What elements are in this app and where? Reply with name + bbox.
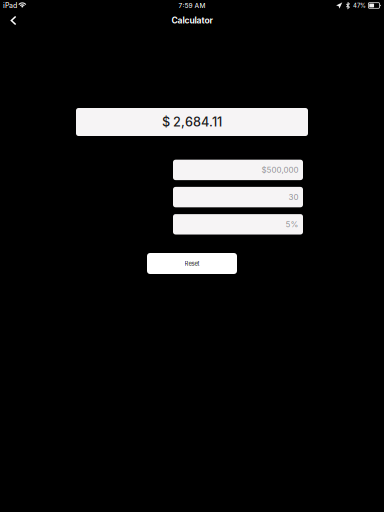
button[interactable]: Back	[0, 11, 27, 30]
staticText: Calculator	[171, 15, 212, 26]
staticText: $500,000	[261, 165, 298, 175]
staticText: 30	[288, 192, 298, 202]
staticText: iPad	[3, 1, 17, 10]
button[interactable]: 30	[173, 187, 303, 207]
staticText: 7:59 AM	[178, 1, 205, 9]
button[interactable]: Reset	[147, 253, 237, 274]
staticText: 5%	[285, 219, 298, 229]
staticText: 47%	[353, 2, 366, 9]
staticText: Reset	[184, 260, 199, 267]
button[interactable]: $500,000	[173, 160, 303, 180]
staticText: $ 2,684.11	[162, 114, 222, 130]
button[interactable]: 5%	[173, 214, 303, 234]
